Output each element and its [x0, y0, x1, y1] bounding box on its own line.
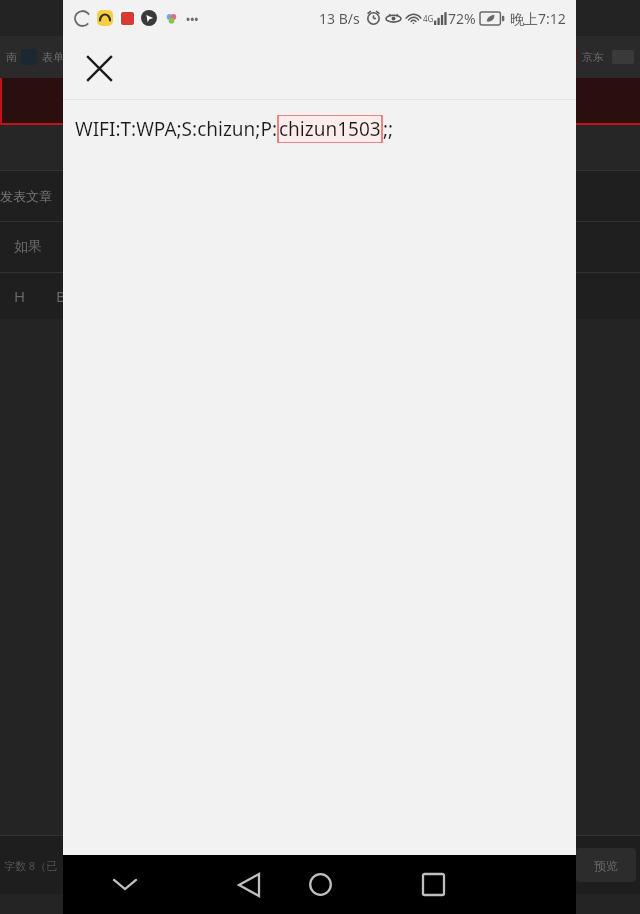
staticText: 南: [6, 50, 17, 64]
staticText: chizun1503: [279, 116, 381, 142]
staticText: 如果: [14, 238, 42, 256]
staticText: 13 B/s: [319, 9, 360, 28]
button[interactable]: Hide keyboard: [85, 855, 165, 914]
staticText: 晚上7:12: [510, 9, 566, 28]
staticText: 预览: [594, 858, 618, 873]
staticText: ;;: [383, 116, 394, 142]
staticText: 发表文章: [0, 188, 52, 204]
button[interactable]: Recent apps: [393, 855, 473, 914]
button[interactable]: Close: [71, 40, 127, 96]
button[interactable]: Back: [209, 855, 289, 914]
staticText: 字数 8（已: [4, 858, 58, 873]
button[interactable]: chizun1503: [277, 115, 383, 143]
staticText: B: [56, 286, 66, 306]
staticText: WIFI:T:WPA;S:chizun;P:: [75, 116, 277, 142]
staticText: 表单: [42, 50, 64, 64]
staticText: 4G: [423, 13, 434, 24]
staticText: 京东: [582, 50, 604, 64]
button[interactable]: Home: [280, 855, 360, 914]
staticText: H: [14, 286, 26, 306]
staticText: 72%: [448, 9, 476, 28]
staticText: •••: [186, 11, 199, 26]
